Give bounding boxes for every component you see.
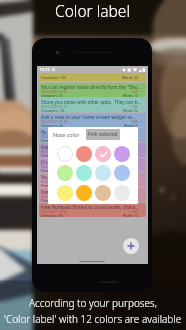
button[interactable]: You can write a memo quickly and simply.… [39, 173, 146, 187]
staticText: Characters: 129 [41, 75, 66, 80]
button[interactable]: Share you notes with other apps. They ca… [39, 98, 146, 112]
button[interactable]: Colour swatch [95, 185, 111, 201]
staticText: Characters: 64 [41, 139, 63, 142]
staticText: 00/21/2020 01:00 [41, 90, 67, 94]
staticText: 00/21/2020 01:18 [41, 120, 67, 124]
staticText: You can write a memo quickly and simply.… [41, 174, 134, 180]
button[interactable]: Add note [123, 238, 139, 254]
staticText: Words: 13 [123, 199, 138, 202]
staticText: Words: 12 [123, 94, 138, 97]
staticText: By pinning the note, you can keep it at … [41, 129, 136, 135]
button[interactable]: Pink selected [86, 129, 120, 140]
button[interactable]: By pinning the note, you can keep it at … [39, 128, 146, 142]
staticText: 7:58 [131, 120, 138, 124]
staticText: 00/21/2020 01:33 [41, 150, 67, 154]
staticText: 'Color label' with 12 colors are availab… [4, 312, 182, 326]
button[interactable]: Notes can be sorted by colour or by date… [39, 188, 146, 202]
button[interactable]: It's simple and easy to use notepad app.… [39, 158, 146, 172]
button[interactable]: Colour swatch [57, 165, 73, 181]
button[interactable]: Colour swatch [57, 146, 73, 162]
staticText: 7:58 [131, 105, 138, 109]
staticText: You can register notes directly from the… [41, 84, 141, 90]
staticText: Characters: 58 [41, 154, 63, 157]
staticText: Add a note to your home screen widget so… [41, 114, 136, 120]
staticText: Characters: 132 [41, 109, 65, 112]
staticText: Note color [53, 131, 80, 138]
staticText: Notes can be sorted by colour or by date… [41, 189, 133, 195]
staticText: Add a note to your home screen widget so… [41, 144, 136, 150]
button[interactable]: Free Notepad (Notes) to count words, cha… [39, 203, 146, 217]
staticText: 7:58 [131, 90, 138, 94]
staticText: 7:58 [131, 210, 138, 214]
staticText: According to your purposes, [29, 296, 157, 310]
staticText: Words: 9 [124, 124, 138, 127]
staticText: Words: 20 [122, 75, 138, 80]
staticText: Words: 10 [123, 154, 138, 157]
button[interactable]: Colour swatch [95, 146, 111, 162]
staticText: 00/21/2020 03:40 [41, 195, 67, 199]
staticText: 00/21/2020 04:50 [41, 210, 67, 214]
staticText: 00/21/2020 03:10 [41, 180, 67, 184]
staticText: Words: 20 [123, 169, 138, 172]
staticText: Characters: 75 [41, 94, 63, 97]
staticText: 00/21/2020 02:30 [41, 165, 67, 169]
staticText: Words: 24 [123, 109, 138, 112]
staticText: 00/21/2020 01:15 [41, 105, 67, 109]
button[interactable]: Characters: 129 [39, 73, 146, 81]
staticText: Pink selected [88, 131, 118, 138]
button[interactable]: Colour swatch [76, 185, 92, 201]
staticText: Words: 16 [123, 184, 138, 187]
button[interactable]: You can register notes directly from the… [39, 83, 146, 97]
staticText: Characters: 48 [41, 124, 63, 127]
staticText: 00/21/2020 01:25 [41, 135, 67, 139]
button[interactable]: Colour swatch [114, 185, 130, 201]
staticText: It's simple and easy to use notepad app.… [41, 159, 131, 165]
button[interactable]: Colour swatch [76, 146, 92, 162]
staticText: Share you notes with other apps. They ca… [41, 99, 142, 105]
staticText: Characters: 100 [41, 169, 65, 172]
button[interactable]: Colour swatch [114, 165, 130, 181]
staticText: Words: 14 [123, 214, 138, 217]
staticText: Characters: 92 [41, 184, 63, 187]
staticText: Free Notepad (Notes) to count words, cha… [41, 204, 139, 210]
staticText: Characters: 80 [41, 214, 63, 217]
button[interactable]: Colour swatch [114, 146, 130, 162]
staticText: 19:13 [39, 67, 50, 73]
button[interactable]: Add a note to your home screen widget so… [39, 143, 146, 157]
button[interactable]: Colour swatch [76, 165, 92, 181]
staticText: Color label [55, 0, 131, 20]
button[interactable]: Colour swatch [57, 185, 73, 201]
staticText: Characters: 70 [41, 199, 63, 202]
button[interactable]: Colour swatch [95, 165, 111, 181]
button[interactable]: Add a note to your home screen widget so… [39, 113, 146, 127]
